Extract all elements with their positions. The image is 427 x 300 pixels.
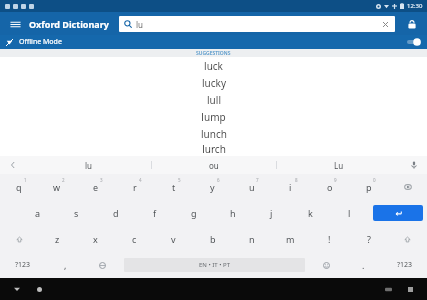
staticText: lucky <box>202 76 226 90</box>
button[interactable]: a <box>18 200 57 226</box>
button[interactable]: x <box>76 226 115 252</box>
button[interactable]: b <box>193 226 232 252</box>
button[interactable]: 8 <box>271 174 310 200</box>
button[interactable]: lu <box>124 16 390 32</box>
staticText: 9 <box>334 177 337 183</box>
button[interactable]: Lu <box>277 156 401 174</box>
button[interactable]: Shift <box>388 226 427 252</box>
button[interactable]: d <box>96 200 135 226</box>
button[interactable]: 0 <box>349 174 388 200</box>
button[interactable]: s <box>57 200 96 226</box>
button[interactable]: 7 <box>232 174 271 200</box>
staticText: l <box>348 207 351 219</box>
button[interactable]: Shift <box>0 226 38 252</box>
button[interactable]: 2 <box>38 174 76 200</box>
button[interactable]: luck <box>0 57 427 74</box>
staticText: a <box>35 207 41 219</box>
staticText: Oxford Dictionary <box>29 18 109 30</box>
button[interactable]: n <box>232 226 271 252</box>
staticText: lu <box>85 160 93 171</box>
button[interactable]: lu <box>26 156 151 174</box>
button[interactable]: . <box>345 252 382 278</box>
button[interactable]: f <box>135 200 174 226</box>
button[interactable]: Keyboard <box>381 282 395 296</box>
button[interactable]: l <box>330 200 369 226</box>
staticText: f <box>153 207 157 219</box>
staticText: p <box>366 181 372 193</box>
staticText: r <box>133 181 137 193</box>
button[interactable]: Recent apps <box>403 282 417 296</box>
button[interactable]: 1 <box>0 174 38 200</box>
staticText: e <box>93 181 99 193</box>
staticText: lu <box>136 19 144 30</box>
button[interactable]: v <box>154 226 193 252</box>
button[interactable]: 6 <box>193 174 232 200</box>
staticText: 1 <box>24 177 27 183</box>
button[interactable]: Back <box>10 282 24 296</box>
button[interactable]: ! <box>310 226 349 252</box>
button[interactable]: ?123 <box>382 252 427 278</box>
button[interactable] <box>0 156 26 174</box>
staticText: t <box>172 181 176 193</box>
button[interactable]: lucky <box>0 74 427 91</box>
button[interactable]: lurch <box>0 142 427 156</box>
button[interactable]: EN • IT • PT <box>124 258 305 272</box>
button[interactable]: ou <box>152 156 276 174</box>
button[interactable]: lunch <box>0 125 427 142</box>
staticText: 0 <box>373 177 376 183</box>
staticText: ?123 <box>397 260 413 270</box>
staticText: 7 <box>256 177 259 183</box>
staticText: ?123 <box>15 260 31 270</box>
button[interactable]: Voice input <box>401 156 427 174</box>
staticText: , <box>64 259 67 271</box>
staticText: 2 <box>62 177 65 183</box>
staticText: 3 <box>100 177 103 183</box>
button[interactable]: 4 <box>115 174 154 200</box>
staticText: lurch <box>202 142 226 156</box>
button[interactable]: ? <box>349 226 388 252</box>
staticText: EN • IT • PT <box>199 261 230 269</box>
button[interactable]: Open navigation drawer <box>6 15 24 33</box>
button[interactable]: ?123 <box>0 252 46 278</box>
staticText: w <box>53 181 61 193</box>
button[interactable]: 3 <box>76 174 115 200</box>
staticText: 12:30 <box>407 2 423 10</box>
staticText: ou <box>209 160 219 171</box>
button[interactable]: 5 <box>154 174 193 200</box>
button[interactable]: Offline mode toggle <box>403 36 421 48</box>
button[interactable]: c <box>115 226 154 252</box>
staticText: y <box>210 181 215 193</box>
button[interactable]: k <box>291 200 330 226</box>
staticText: x <box>93 233 98 245</box>
button[interactable]: g <box>174 200 213 226</box>
button[interactable]: , <box>46 252 84 278</box>
button[interactable]: Emoji <box>308 252 345 278</box>
button[interactable]: h <box>213 200 252 226</box>
staticText: q <box>16 181 22 193</box>
button[interactable]: Home <box>32 282 46 296</box>
staticText: Lu <box>334 160 344 171</box>
button[interactable]: Backspace <box>388 174 427 200</box>
button[interactable]: Clear search <box>380 19 390 29</box>
button[interactable]: j <box>252 200 291 226</box>
staticText: c <box>132 233 137 245</box>
staticText: SUGGESTIONS <box>196 50 231 57</box>
button[interactable]: 9 <box>310 174 349 200</box>
button[interactable]: Enter <box>373 205 423 221</box>
button[interactable]: z <box>38 226 76 252</box>
staticText: s <box>74 207 79 219</box>
staticText: i <box>289 181 292 193</box>
staticText: 4 <box>139 177 142 183</box>
staticText: m <box>286 233 295 245</box>
staticText: h <box>230 207 236 219</box>
staticText: b <box>210 233 216 245</box>
button[interactable]: m <box>271 226 310 252</box>
button[interactable]: Change language <box>84 252 121 278</box>
button[interactable]: lull <box>0 91 427 108</box>
staticText: n <box>249 233 255 245</box>
button[interactable]: Unlock premium <box>403 15 421 33</box>
staticText: Offline Mode <box>19 37 62 47</box>
staticText: luck <box>204 59 223 73</box>
button[interactable]: lump <box>0 108 427 125</box>
staticText: 6 <box>217 177 220 183</box>
